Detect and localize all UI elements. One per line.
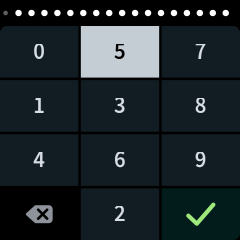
button[interactable]: 3 [81,80,159,132]
button[interactable]: 5 [81,26,159,78]
button[interactable]: Delete [0,188,78,240]
staticText: 9 [195,144,207,176]
staticText: 5 [114,36,126,68]
button[interactable]: 4 [0,134,78,186]
staticText: 3 [114,90,126,122]
button[interactable]: Confirm passcode [162,188,240,240]
button[interactable]: 8 [162,80,240,132]
staticText: 1 [33,90,45,122]
staticText: 4 [33,144,45,176]
staticText: 8 [195,90,207,122]
button[interactable]: 7 [162,26,240,78]
button[interactable]: 9 [162,134,240,186]
button[interactable]: 6 [81,134,159,186]
button[interactable]: 0 [0,26,78,78]
button[interactable]: 2 [81,188,159,240]
staticText: 2 [114,198,126,230]
staticText: 7 [195,36,207,68]
staticText: 6 [114,144,126,176]
staticText: 0 [33,36,45,68]
button[interactable]: 1 [0,80,78,132]
